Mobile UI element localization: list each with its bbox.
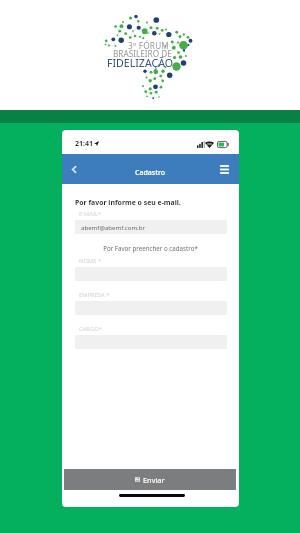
staticText: 3º FÓRUM xyxy=(128,40,170,51)
staticText: 21:41 xyxy=(75,139,93,149)
staticText: NOME * xyxy=(79,257,102,265)
button[interactable]: Enviar xyxy=(64,469,236,490)
staticText: E-MAIL* xyxy=(79,210,102,218)
button[interactable]: Menu xyxy=(214,160,234,178)
button[interactable]: Back xyxy=(64,161,83,177)
staticText: FIDELIZAÇÃO xyxy=(107,56,173,70)
staticText: Por Favor preencher o cadastro* xyxy=(62,244,239,252)
staticText: EMPRESA * xyxy=(79,291,110,299)
staticText: CARGO* xyxy=(79,325,102,333)
button[interactable]: abemf@abemf.com.br xyxy=(75,220,227,234)
staticText: Enviar xyxy=(143,475,165,485)
staticText: BRASILEIRO DE xyxy=(113,48,172,59)
staticText: Cadastro xyxy=(135,168,165,178)
staticText: Por favor informe o seu e-mail. xyxy=(75,198,181,207)
staticText: abemf@abemf.com.br xyxy=(81,223,145,231)
